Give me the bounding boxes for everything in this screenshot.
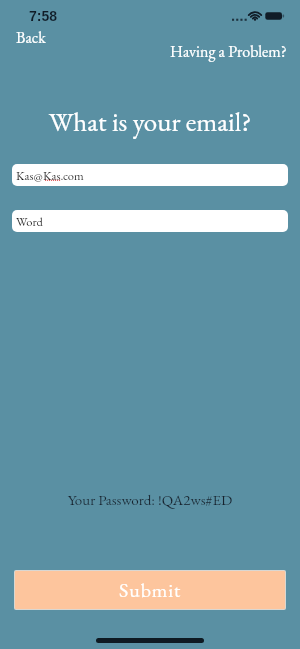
button[interactable]: Back	[16, 27, 46, 48]
staticText: Word	[16, 213, 43, 229]
staticText: 7:58	[29, 8, 58, 24]
staticText: What is your email?	[0, 104, 300, 139]
button[interactable]: Word	[12, 210, 288, 232]
staticText: Your Password: !QA2ws#ED	[0, 490, 300, 510]
button[interactable]: Having a Problem?	[170, 41, 287, 62]
staticText: Submit	[119, 577, 182, 603]
staticText: Back	[16, 27, 46, 48]
other: Cellular, Wi-Fi and battery status	[231, 11, 287, 21]
button[interactable]: Submit	[15, 571, 285, 609]
button[interactable]: Kas@Kas.com	[12, 164, 288, 186]
staticText: Kas@Kas.com	[16, 167, 84, 183]
staticText: Having a Problem?	[170, 41, 287, 62]
